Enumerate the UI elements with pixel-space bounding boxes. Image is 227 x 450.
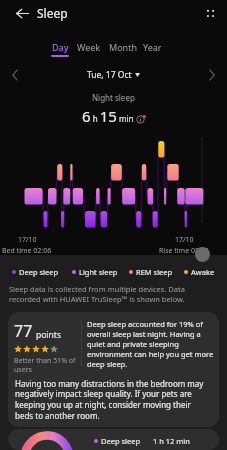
staticText: Night sleep [92, 92, 135, 103]
button[interactable]: Month [109, 26, 137, 53]
button[interactable]: REM sleep [129, 267, 173, 277]
button[interactable]: Week [77, 26, 101, 53]
staticText: Awake [191, 267, 215, 277]
button[interactable]: Deep sleep [12, 267, 59, 277]
staticText: Year [143, 41, 162, 53]
staticText: Deep sleep [19, 267, 59, 277]
button[interactable]: More options [199, 2, 221, 24]
staticText: Week [77, 41, 101, 53]
staticText: Better than 51% of users [14, 356, 81, 374]
button[interactable]: Awake [184, 267, 215, 277]
staticText: Rise time 08:35 [159, 246, 209, 255]
button[interactable]: Previous day [7, 67, 23, 83]
staticText: 17/10 [18, 235, 37, 245]
staticText: Sleep data is collected from multiple de… [9, 284, 217, 304]
staticText: REM sleep [136, 267, 173, 277]
button[interactable]: Back [11, 2, 33, 24]
button[interactable]: Year [143, 26, 162, 53]
staticText: Day [52, 41, 69, 53]
button[interactable]: Sleep info [136, 114, 146, 124]
staticText: Month [109, 41, 137, 53]
staticText: 17/10 [175, 235, 194, 245]
staticText: 1 h 12 min [153, 436, 190, 446]
button[interactable]: Day [51, 26, 69, 57]
staticText: Deep sleep [101, 436, 141, 446]
staticText: 77 [14, 320, 33, 342]
staticText: Sleep [37, 5, 68, 21]
button[interactable]: Scroll handle [195, 247, 210, 262]
staticText: Light sleep [79, 267, 118, 277]
button[interactable]: 77 [8, 312, 219, 427]
staticText: Tue, 17 Oct [87, 69, 132, 81]
button[interactable]: Next day [204, 67, 220, 83]
staticText: Bed time 02:06 [2, 246, 52, 255]
staticText: Having too many distractions in the bedr… [15, 378, 211, 422]
button[interactable]: Tue, 17 Oct [83, 67, 144, 83]
staticText: 6 h 15 min [82, 106, 136, 126]
button[interactable]: Light sleep [72, 267, 118, 277]
button[interactable]: Deep sleep [8, 429, 219, 450]
staticText: Deep sleep accounted for 19% of overall … [87, 319, 216, 369]
staticText: points [36, 329, 61, 341]
